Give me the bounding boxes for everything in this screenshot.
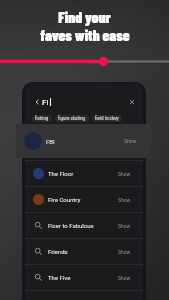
staticText: figure skating (58, 116, 86, 121)
button[interactable]: FBI (25, 135, 143, 160)
staticText: The Five (48, 274, 71, 281)
staticText: Show (124, 138, 137, 144)
staticText: The Floor (48, 170, 74, 177)
staticText: field hockey (95, 116, 119, 121)
staticText: fishing (35, 116, 49, 121)
button[interactable]: The Five (25, 265, 143, 290)
button[interactable]: Fire Country (25, 187, 143, 212)
staticText: Show (118, 249, 131, 255)
button[interactable]: Fixer to Fabulous (25, 213, 143, 238)
staticText: Show (118, 171, 131, 177)
button[interactable]: field hockey (92, 115, 122, 122)
staticText: Fire Country (48, 196, 81, 203)
button[interactable]: FBI (16, 124, 151, 158)
staticText: Show (118, 275, 131, 281)
staticText: Fixer to Fabulous (48, 222, 94, 229)
button[interactable]: Back (33, 98, 41, 106)
staticText: Find your (58, 8, 111, 26)
staticText: faves with ease (40, 26, 130, 44)
staticText: Friends (48, 248, 68, 255)
staticText: Fi (42, 98, 49, 107)
staticText: FBI (46, 138, 55, 145)
button[interactable]: fishing (32, 115, 52, 122)
staticText: Show (118, 197, 131, 203)
button[interactable]: The Floor (25, 161, 143, 186)
button[interactable]: Friends (25, 239, 143, 264)
button[interactable]: figure skating (55, 115, 89, 122)
button[interactable]: Clear search (129, 99, 135, 105)
staticText: Show (118, 223, 131, 229)
